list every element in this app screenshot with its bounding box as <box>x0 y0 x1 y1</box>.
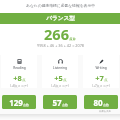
staticText: 点 <box>104 78 108 82</box>
staticText: 結果を共有 <box>99 110 111 113</box>
staticText: +7 <box>95 73 104 83</box>
button[interactable]: バランス型 <box>0 13 120 24</box>
staticText: Listening <box>53 66 67 70</box>
button[interactable]: Writing <box>83 55 119 88</box>
staticText: Writing <box>95 66 107 70</box>
button[interactable]: 57 <box>43 95 77 109</box>
staticText: 点数 <box>23 103 29 107</box>
button[interactable]: Reading <box>1 55 37 88</box>
other: Listening <box>58 59 63 64</box>
staticText: 点数 <box>103 103 109 107</box>
staticText: (+8点スコア) <box>10 84 28 88</box>
staticText: 266 <box>44 24 69 44</box>
staticText: 点 <box>22 78 26 82</box>
staticText: (+5点スコア) <box>51 84 69 88</box>
staticText: 点台 <box>69 37 76 41</box>
staticText: 57 <box>52 97 62 108</box>
other: Reading <box>17 59 22 64</box>
button[interactable]: 129 <box>2 95 36 109</box>
staticText: 80 <box>93 97 103 108</box>
staticText: Reading <box>13 66 26 70</box>
staticText: あなたの健康指標に必要な情報を表示中 <box>26 3 95 8</box>
button[interactable]: Listening <box>42 55 78 88</box>
button[interactable]: 80 <box>84 95 118 109</box>
staticText: 点 <box>63 78 67 82</box>
staticText: 129 <box>9 97 23 108</box>
staticText: +5 <box>54 73 63 83</box>
staticText: (+7点スコア) <box>92 84 110 88</box>
staticText: バランス型 <box>46 15 75 22</box>
button[interactable]: 結果を共有 <box>98 109 112 114</box>
other: Writing <box>99 59 104 64</box>
staticText: Y958 + 46 + 36 + 42 = 2078 <box>37 43 84 48</box>
staticText: +8 <box>13 73 22 83</box>
staticText: 点数 <box>62 103 68 107</box>
